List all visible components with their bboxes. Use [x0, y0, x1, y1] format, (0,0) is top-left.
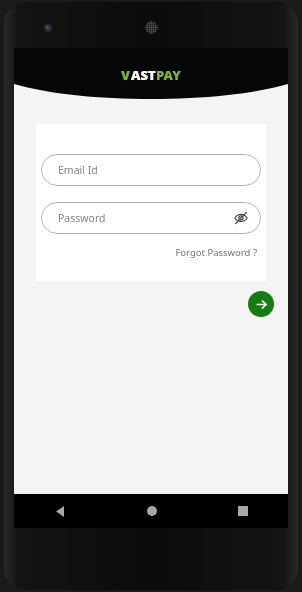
button[interactable]: Recent apps	[197, 494, 288, 528]
button[interactable]: Email Id	[41, 154, 261, 186]
button[interactable]: Back	[14, 494, 106, 528]
button[interactable]: Forgot Password ?	[171, 244, 261, 261]
button[interactable]: Sign in	[248, 291, 274, 317]
staticText: PAY	[156, 66, 181, 84]
staticText: Email Id	[58, 163, 98, 177]
button[interactable]: Password	[41, 202, 261, 234]
button[interactable]: Home	[106, 494, 197, 528]
staticText: V	[121, 66, 131, 84]
button[interactable]: Show password	[231, 208, 251, 228]
staticText: Password	[58, 211, 106, 225]
staticText: Forgot Password ?	[175, 246, 257, 259]
staticText: AST	[131, 66, 156, 84]
